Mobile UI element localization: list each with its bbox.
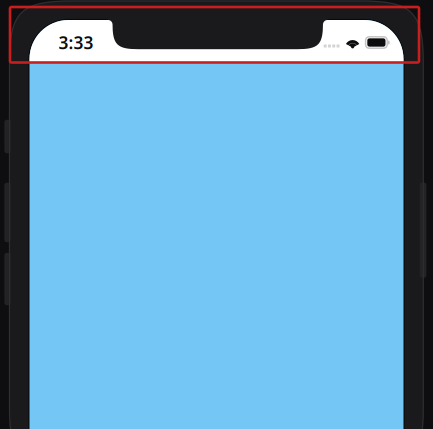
staticText: 3:33 <box>58 31 93 54</box>
